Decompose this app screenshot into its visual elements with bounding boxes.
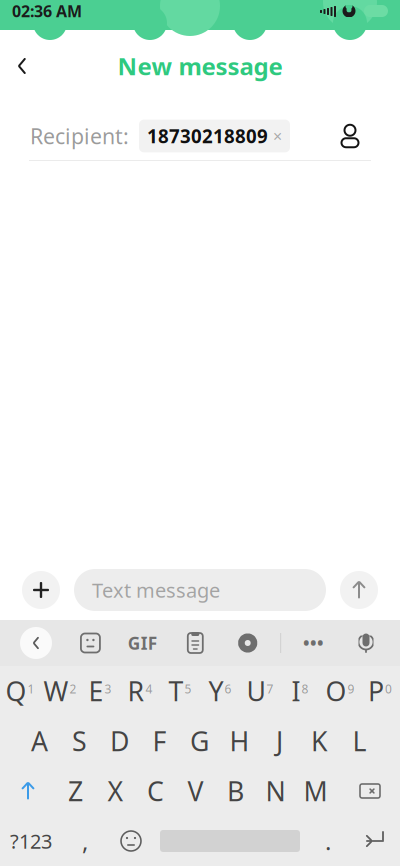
staticText: New message (117, 50, 282, 82)
staticText: G (190, 723, 209, 759)
button[interactable]: Add attachment (22, 571, 60, 609)
button[interactable]: Choose contact (330, 116, 370, 156)
staticText: R (127, 673, 144, 709)
staticText: Z (68, 773, 83, 809)
button[interactable]: W (40, 667, 80, 715)
button[interactable]: Y (200, 667, 240, 715)
button[interactable]: B (216, 767, 256, 815)
button[interactable]: T (160, 667, 200, 715)
button[interactable]: Text message (74, 569, 326, 611)
button[interactable]: N (256, 767, 296, 815)
staticText: N (265, 773, 285, 809)
staticText: H (229, 723, 249, 759)
button[interactable]: R (120, 667, 160, 715)
staticText: 02:36 AM (12, 0, 82, 22)
button[interactable]: X (96, 767, 136, 815)
staticText: 8 (301, 681, 308, 697)
staticText: 9 (347, 681, 354, 697)
staticText: C (147, 773, 164, 809)
staticText: 6 (224, 681, 231, 697)
button[interactable]: P (360, 667, 400, 715)
button[interactable]: J (260, 717, 300, 765)
staticText: F (152, 723, 166, 759)
staticText: D (110, 723, 129, 759)
staticText: ••• (303, 631, 324, 654)
staticText: 7 (266, 681, 273, 697)
button[interactable]: 18730218809 (139, 120, 290, 152)
button[interactable]: Keyboard settings (228, 623, 268, 663)
staticText: B (227, 773, 244, 809)
staticText: 18730218809 (147, 124, 268, 148)
staticText: GIF (128, 631, 158, 654)
button[interactable]: K (300, 717, 340, 765)
staticText: M (303, 773, 327, 809)
button[interactable]: ?123 (0, 817, 62, 865)
button[interactable]: . (306, 817, 350, 865)
staticText: 3 (104, 681, 111, 697)
button[interactable]: C (136, 767, 176, 815)
button[interactable]: F (140, 717, 180, 765)
staticText: E (88, 673, 103, 709)
staticText: 4 (145, 681, 152, 697)
staticText: K (311, 723, 328, 759)
staticText: 0 (385, 681, 392, 697)
button[interactable]: M (296, 767, 336, 815)
button[interactable]: V (176, 767, 216, 815)
staticText: V (187, 773, 203, 809)
button[interactable]: I (280, 667, 320, 715)
button[interactable]: Emoji (108, 817, 154, 865)
staticText: × (273, 125, 282, 147)
button[interactable]: GIF (123, 623, 163, 663)
staticText: Recipient: (30, 122, 129, 150)
staticText: J (276, 723, 283, 759)
staticText: T (168, 673, 183, 709)
staticText: A (31, 723, 48, 759)
button[interactable]: Collapse toolbar (14, 623, 58, 663)
button[interactable]: E (80, 667, 120, 715)
button[interactable]: Backspace (336, 767, 400, 815)
staticText: , (82, 825, 88, 857)
staticText: U (246, 673, 265, 709)
button[interactable]: Back (0, 44, 44, 88)
button[interactable]: O (320, 667, 360, 715)
button[interactable]: Z (56, 767, 96, 815)
button[interactable]: A (20, 717, 60, 765)
staticText: Text message (92, 577, 220, 603)
staticText: . (325, 825, 331, 857)
staticText: Q (5, 673, 26, 709)
button[interactable]: Space (154, 817, 306, 865)
button[interactable]: Return (350, 817, 400, 865)
button[interactable]: Shift (0, 767, 56, 815)
staticText: P (368, 673, 384, 709)
button[interactable]: U (240, 667, 280, 715)
button[interactable]: Q (0, 667, 40, 715)
staticText: I (291, 673, 300, 709)
staticText: X (107, 773, 123, 809)
button[interactable]: Voice input (346, 623, 386, 663)
staticText: S (72, 723, 87, 759)
button[interactable]: L (340, 717, 380, 765)
staticText: Y (208, 673, 223, 709)
staticText: W (43, 673, 68, 709)
button[interactable]: Clipboard (175, 623, 215, 663)
button[interactable]: More (294, 623, 334, 663)
button[interactable]: , (62, 817, 108, 865)
staticText: ?123 (10, 828, 52, 854)
staticText: O (325, 673, 346, 709)
button[interactable]: S (60, 717, 100, 765)
button[interactable]: Stickers (70, 623, 110, 663)
button[interactable]: D (100, 717, 140, 765)
staticText: 2 (69, 681, 76, 697)
staticText: 1 (27, 681, 34, 697)
staticText: 5 (184, 681, 191, 697)
button[interactable]: Send (340, 571, 378, 609)
staticText: L (352, 723, 366, 759)
button[interactable]: H (220, 717, 260, 765)
button[interactable]: G (180, 717, 220, 765)
